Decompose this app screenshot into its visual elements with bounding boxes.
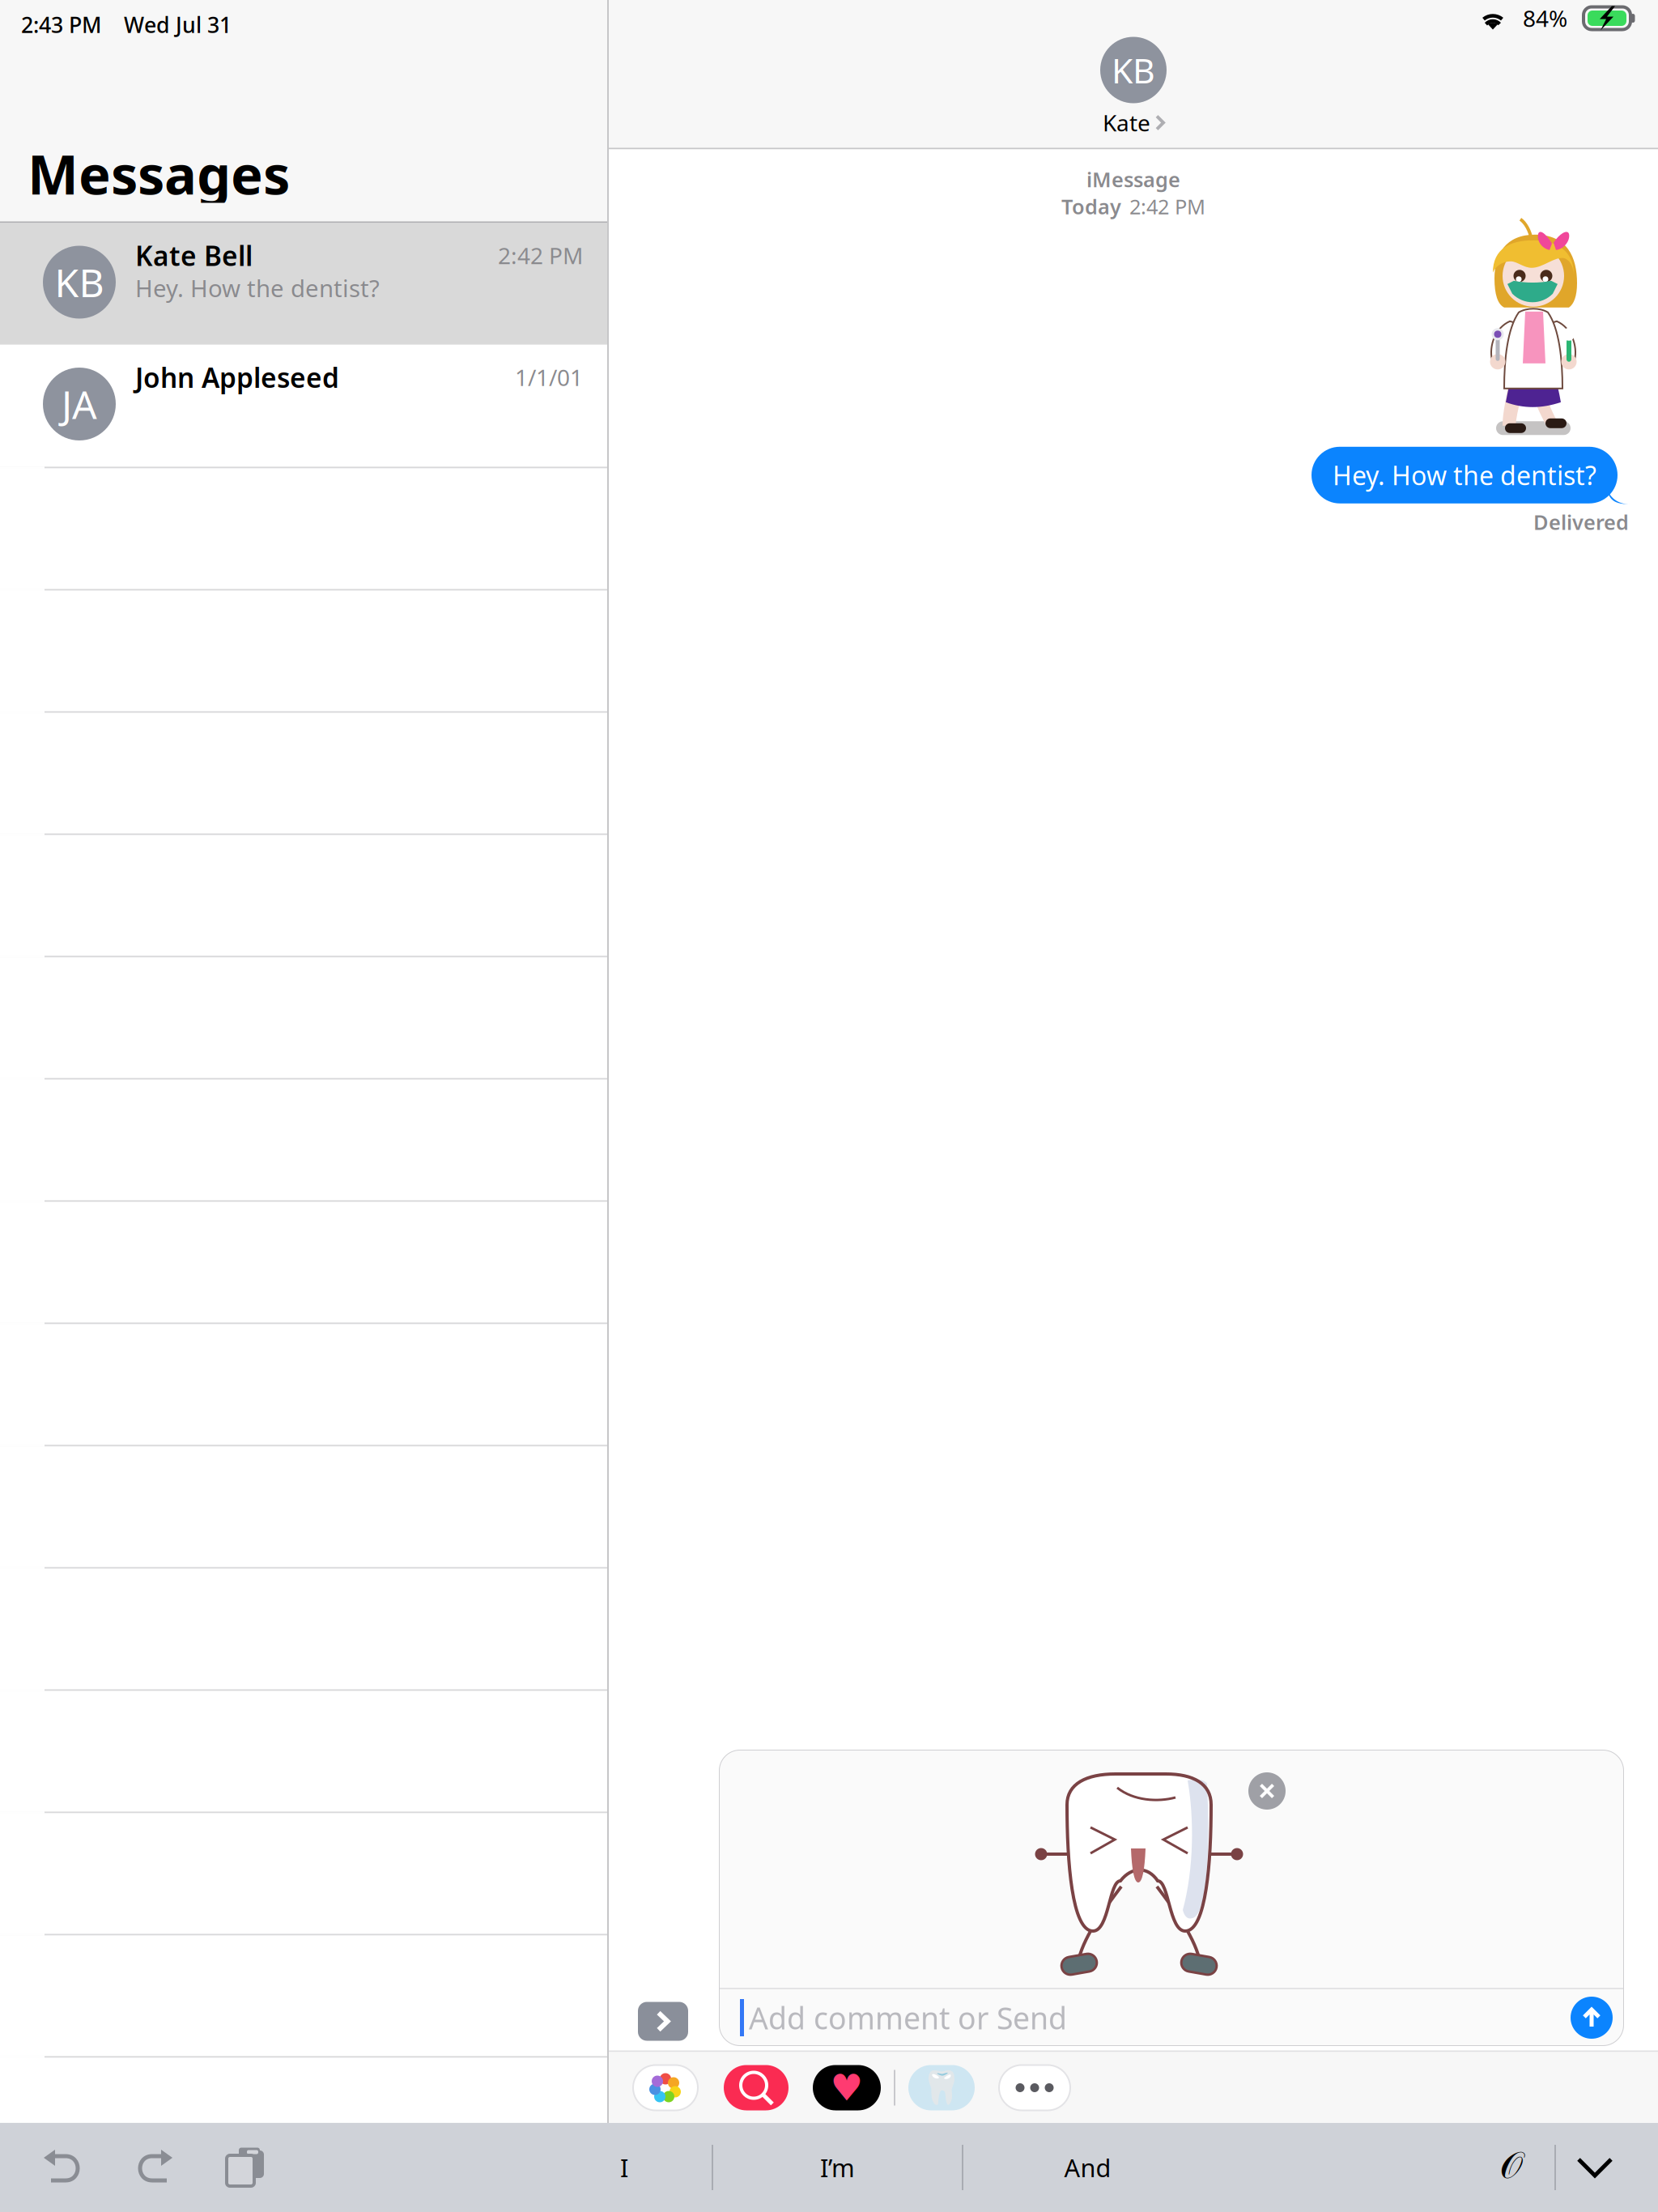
button[interactable]: More apps <box>999 2065 1070 2110</box>
button[interactable]: Handwriting <box>1482 2123 1541 2212</box>
button[interactable]: Undo <box>45 2148 87 2187</box>
button[interactable]: I’m <box>713 2123 962 2212</box>
staticText: Messages <box>28 138 290 209</box>
button[interactable]: And <box>963 2123 1212 2212</box>
staticText: Hey. How the dentist? <box>135 272 380 304</box>
staticText: Today <box>1061 193 1121 220</box>
staticText: 1/1/01 <box>515 362 583 392</box>
staticText: Hey. How the dentist? <box>1333 458 1596 492</box>
button[interactable]: Image search <box>724 2065 789 2110</box>
button[interactable]: Tooth stickers <box>908 2065 975 2110</box>
staticText: 2:43 PM <box>21 10 101 39</box>
staticText: 2:42 PM <box>498 240 583 271</box>
staticText: JA <box>62 378 97 430</box>
button[interactable]: JA <box>0 345 607 466</box>
button[interactable]: Hide keyboard <box>1556 2123 1634 2212</box>
staticText: KB <box>55 256 104 308</box>
staticText: Wed Jul 31 <box>124 10 232 39</box>
button[interactable]: Remove sticker <box>1248 1772 1286 1810</box>
button[interactable]: Send <box>1571 1997 1613 2039</box>
staticText: John Appleseed <box>135 359 339 395</box>
staticText: 84% <box>1523 3 1567 33</box>
staticText: Add comment or Send <box>749 1998 1067 2038</box>
staticText: I <box>620 2151 628 2184</box>
staticText: 🦷 <box>921 2069 962 2106</box>
staticText: iMessage <box>1086 166 1180 193</box>
staticText: 2:42 PM <box>1129 193 1205 220</box>
staticText: And <box>1064 2151 1111 2184</box>
button[interactable]: I <box>537 2123 712 2212</box>
button[interactable]: Paste <box>222 2145 267 2190</box>
button[interactable]: Photos <box>633 2065 698 2110</box>
button[interactable]: Expand <box>638 2002 688 2041</box>
staticText: ♥ <box>830 2067 863 2109</box>
staticText: Delivered <box>1533 508 1629 536</box>
button[interactable]: Redo <box>131 2148 173 2187</box>
staticText: 𝒪 <box>1500 2150 1523 2185</box>
staticText: Kate Bell <box>135 238 253 273</box>
button[interactable]: Digital Touch <box>813 2065 881 2110</box>
staticText: Kate <box>1103 108 1150 138</box>
button[interactable]: KB <box>1100 37 1167 142</box>
staticText: KB <box>1112 47 1155 93</box>
button[interactable]: KB <box>0 223 607 345</box>
staticText: I’m <box>820 2151 855 2184</box>
